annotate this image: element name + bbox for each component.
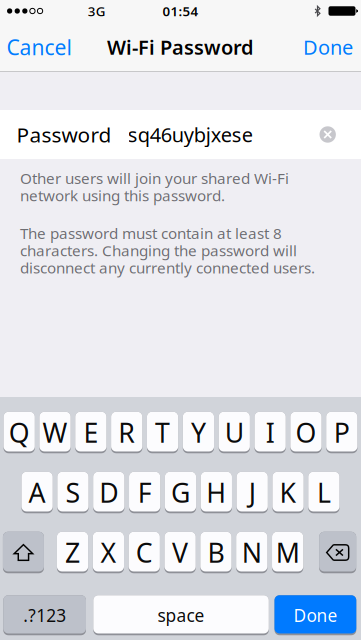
button[interactable]: U (219, 412, 250, 453)
button[interactable]: Delete (319, 532, 356, 573)
staticText: U (225, 415, 244, 450)
staticText: D (99, 475, 118, 510)
button[interactable]: C (129, 532, 160, 573)
staticText: Password (17, 120, 112, 149)
button[interactable]: Z (57, 532, 88, 573)
button[interactable]: S (57, 472, 88, 513)
staticText: Cancel (6, 33, 71, 61)
staticText: disconnect any currently connected users… (20, 257, 315, 278)
button[interactable]: V (164, 532, 196, 573)
button[interactable]: X (93, 532, 124, 573)
button[interactable]: B (200, 532, 231, 573)
staticText: V (172, 535, 188, 570)
staticText: Z (65, 535, 80, 570)
staticText: L (317, 475, 331, 510)
staticText: Done (293, 604, 337, 627)
button[interactable]: Shift (3, 532, 44, 573)
staticText: S (65, 475, 80, 510)
button[interactable]: .?123 (3, 595, 86, 635)
button[interactable]: Q (4, 412, 35, 453)
staticText: A (29, 475, 46, 510)
button[interactable]: Done (293, 22, 361, 72)
staticText: O (295, 415, 316, 450)
staticText: G (171, 475, 190, 510)
staticText: .?123 (23, 604, 66, 627)
staticText: E (83, 415, 98, 450)
button[interactable]: Y (183, 412, 214, 453)
button[interactable]: F (129, 472, 160, 513)
button[interactable]: A (21, 472, 53, 513)
staticText: 01:54 (162, 2, 198, 20)
staticText: H (206, 475, 226, 510)
button[interactable]: G (165, 472, 196, 513)
button[interactable]: P (326, 412, 357, 453)
staticText: P (334, 415, 350, 450)
button[interactable]: J (237, 472, 268, 513)
staticText: 3G (88, 2, 106, 20)
button[interactable]: I (254, 412, 286, 453)
staticText: B (207, 535, 224, 570)
staticText: N (242, 535, 262, 570)
staticText: X (100, 535, 116, 570)
staticText: I (266, 415, 275, 450)
button[interactable]: N (236, 532, 267, 573)
staticText: characters. Changing the password will (20, 240, 297, 261)
staticText: W (42, 415, 67, 450)
staticText: Y (191, 415, 206, 450)
staticText: C (136, 535, 153, 570)
button[interactable]: Done (274, 595, 356, 635)
staticText: sq46uybjxese (128, 121, 253, 148)
staticText: M (276, 535, 300, 570)
button[interactable]: E (75, 412, 106, 453)
staticText: Q (9, 415, 30, 450)
staticText: The password must contain at least 8 (20, 223, 282, 243)
staticText: T (155, 415, 170, 450)
button[interactable]: K (272, 472, 304, 513)
button[interactable]: D (93, 472, 124, 513)
staticText: Other users will join your shared Wi-Fi (20, 168, 289, 188)
staticText: R (118, 415, 135, 450)
button[interactable]: H (201, 472, 232, 513)
button[interactable]: L (308, 472, 339, 513)
staticText: K (279, 475, 296, 510)
button[interactable]: W (39, 412, 71, 453)
button[interactable]: O (290, 412, 322, 453)
button[interactable]: T (147, 412, 178, 453)
staticText: J (249, 475, 256, 510)
staticText: space (158, 604, 205, 627)
button[interactable]: R (111, 412, 142, 453)
staticText: Done (303, 33, 353, 61)
button[interactable]: M (272, 532, 303, 573)
button[interactable]: Clear text (314, 112, 342, 156)
staticText: F (138, 475, 152, 510)
button[interactable]: space (93, 595, 269, 635)
staticText: Wi-Fi Password (107, 33, 254, 61)
staticText: network using this password. (20, 185, 225, 206)
button[interactable]: Cancel (0, 22, 77, 72)
